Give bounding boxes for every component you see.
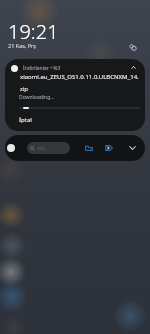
button[interactable]: Profile (7, 144, 15, 152)
staticText: İndirilenler • %3 (23, 65, 61, 72)
button[interactable]: İndirilenler • %3 (5, 59, 145, 131)
button[interactable]: Files (82, 141, 96, 155)
button[interactable]: Collapse (127, 61, 139, 73)
button[interactable]: Settings (127, 41, 138, 52)
staticText: İptal (19, 116, 32, 124)
button[interactable]: Expand (125, 141, 139, 155)
staticText: Downloading... (19, 94, 55, 101)
staticText: ara (37, 145, 45, 152)
button[interactable]: İptal (13, 114, 38, 126)
staticText: xiaomi.eu_ZEUS_OS1.0.11.0.ULBCNXM_14.zip (20, 73, 140, 92)
staticText: 19:21 (8, 18, 59, 45)
staticText: 21 Kas, Prş (8, 42, 36, 49)
button[interactable]: Media player (102, 141, 116, 155)
button[interactable]: ara (27, 142, 70, 154)
